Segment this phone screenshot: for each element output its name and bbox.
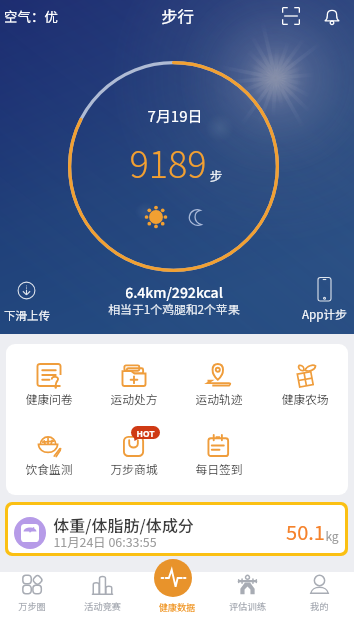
- button[interactable]: 评估训练: [212, 572, 282, 619]
- staticText: 评估训练: [229, 599, 266, 612]
- button[interactable]: 万步商城: [91, 432, 176, 477]
- staticText: 步: [209, 166, 223, 185]
- staticText: 饮食监测: [25, 460, 73, 477]
- staticText: 50.1: [286, 517, 325, 546]
- staticText: 下滑上传: [4, 307, 50, 324]
- staticText: 7月19日: [0, 105, 352, 127]
- button[interactable]: Notifications: [318, 2, 346, 30]
- button[interactable]: 健康问卷: [6, 362, 91, 407]
- button[interactable]: 我的: [284, 572, 354, 619]
- staticText: 万步商城: [110, 460, 158, 477]
- button[interactable]: App计步: [300, 277, 348, 322]
- staticText: 6.4km/292kcal: [0, 282, 351, 302]
- staticText: 体重/体脂肪/体成分: [53, 513, 194, 536]
- button[interactable]: 健康农场: [262, 362, 348, 407]
- button[interactable]: 万步圈: [0, 572, 67, 619]
- button[interactable]: Night steps: [184, 205, 208, 229]
- staticText: 相当于1个鸡腿和2个苹果: [0, 300, 351, 317]
- staticText: 运动轨迹: [195, 390, 243, 407]
- staticText: 健康数据: [154, 600, 200, 613]
- staticText: 万步圈: [18, 599, 46, 612]
- staticText: 健康农场: [281, 390, 329, 407]
- staticText: 9189: [129, 136, 207, 188]
- button[interactable]: 饮食监测: [6, 432, 91, 477]
- staticText: 步行: [161, 4, 194, 28]
- button[interactable]: Scan: [277, 2, 305, 30]
- button[interactable]: 活动竞赛: [67, 572, 137, 619]
- button[interactable]: 每日签到: [176, 432, 262, 477]
- staticText: 每日签到: [195, 460, 243, 477]
- staticText: 健康问卷: [25, 390, 73, 407]
- staticText: 我的: [310, 599, 329, 612]
- staticText: App计步: [302, 305, 347, 322]
- staticText: kg: [325, 527, 339, 544]
- staticText: 运动处方: [110, 390, 158, 407]
- button[interactable]: 健康数据: [150, 557, 196, 615]
- button[interactable]: 运动处方: [91, 362, 176, 407]
- staticText: HOT: [131, 427, 160, 439]
- button[interactable]: 下滑上传: [3, 281, 50, 324]
- button[interactable]: Day steps: [144, 205, 168, 229]
- staticText: 活动竞赛: [84, 599, 121, 612]
- button[interactable]: 运动轨迹: [176, 362, 262, 407]
- staticText: 空气：优: [4, 6, 58, 26]
- button[interactable]: 体重/体脂肪/体成分: [8, 505, 345, 553]
- staticText: 11月24日 06:33:55: [53, 533, 157, 551]
